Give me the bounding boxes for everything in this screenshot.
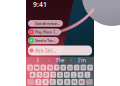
staticText: L xyxy=(86,72,88,77)
staticText: R xyxy=(49,65,51,70)
staticText: W xyxy=(35,65,39,70)
staticText: 9:41 xyxy=(33,0,47,9)
button[interactable]: C xyxy=(50,79,56,85)
button[interactable]: M xyxy=(79,79,85,85)
button[interactable]: N xyxy=(71,79,77,85)
staticText: D xyxy=(45,72,48,77)
button[interactable]: F xyxy=(50,72,56,78)
button[interactable]: K xyxy=(78,72,83,78)
button[interactable]: T xyxy=(54,65,59,71)
staticText: Z xyxy=(37,79,39,85)
staticText: Ask Siri… xyxy=(35,47,56,54)
button[interactable]: A xyxy=(30,72,35,78)
button[interactable]: R xyxy=(47,65,53,71)
button[interactable]: Send a Text Msg xyxy=(28,37,59,44)
button[interactable]: Y xyxy=(60,65,66,71)
staticText: Get directions home xyxy=(35,21,60,26)
button[interactable]: S xyxy=(36,72,42,78)
staticText: K xyxy=(79,72,81,77)
button[interactable]: Ask Siri… xyxy=(28,45,92,55)
button[interactable]: L xyxy=(84,72,90,78)
button[interactable]: I xyxy=(74,65,79,71)
button[interactable]: W xyxy=(34,65,40,71)
staticText: Y xyxy=(62,65,64,70)
staticText: I xyxy=(37,57,39,64)
staticText: C xyxy=(51,79,54,85)
button[interactable]: Play Plans Trip Cln xyxy=(28,28,61,35)
button[interactable]: Q xyxy=(27,65,33,71)
button[interactable]: X xyxy=(42,79,49,85)
staticText: Play Plans Trip Cln xyxy=(35,29,58,35)
staticText: H xyxy=(65,72,68,77)
staticText: P xyxy=(89,65,91,70)
staticText: M xyxy=(80,79,84,85)
staticText: T xyxy=(56,65,58,70)
button[interactable]: The xyxy=(49,57,71,63)
button[interactable]: V xyxy=(57,79,63,85)
staticText: Q xyxy=(28,65,31,70)
button[interactable]: I'm xyxy=(71,57,93,63)
button[interactable]: O xyxy=(80,65,86,71)
staticText: Send a Text Msg xyxy=(35,38,56,43)
button[interactable]: Shift xyxy=(86,79,93,85)
staticText: N xyxy=(73,79,76,85)
staticText: S xyxy=(38,72,40,77)
staticText: I'm xyxy=(78,57,86,64)
button[interactable]: B xyxy=(64,79,70,85)
staticText: O xyxy=(82,65,85,70)
button[interactable]: J xyxy=(71,72,77,78)
staticText: I xyxy=(76,65,77,70)
button[interactable]: I xyxy=(27,57,49,63)
staticText: V xyxy=(59,79,61,85)
button[interactable]: E xyxy=(40,65,46,71)
button[interactable]: G xyxy=(57,72,63,78)
button[interactable]: Shift xyxy=(27,79,34,85)
button[interactable]: Get directions home xyxy=(28,20,63,27)
staticText: The xyxy=(55,57,64,64)
staticText: B xyxy=(66,79,69,85)
staticText: G xyxy=(58,72,61,77)
staticText: J xyxy=(73,72,74,77)
button[interactable]: H xyxy=(64,72,70,78)
button[interactable]: U xyxy=(67,65,73,71)
staticText: F xyxy=(52,72,54,77)
staticText: E xyxy=(42,65,44,70)
button[interactable]: Z xyxy=(35,79,41,85)
staticText: A xyxy=(31,72,34,77)
button[interactable]: P xyxy=(87,65,93,71)
staticText: X xyxy=(44,79,46,85)
button[interactable]: D xyxy=(43,72,49,78)
staticText: U xyxy=(68,65,71,70)
